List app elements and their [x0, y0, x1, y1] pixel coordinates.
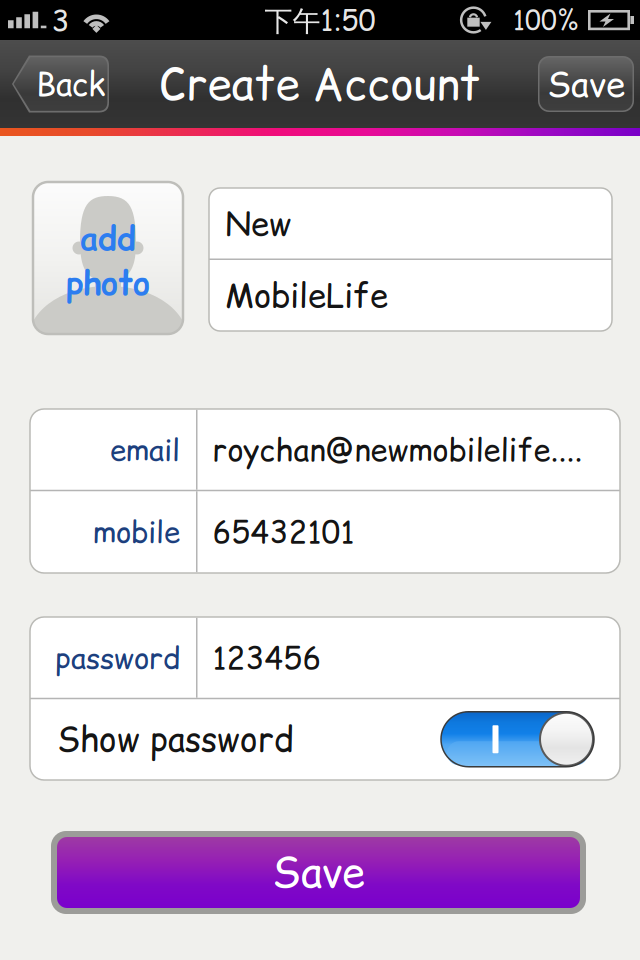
staticText: 3: [51, 0, 69, 40]
button[interactable]: mobile: [30, 491, 620, 572]
staticText: MobileLife: [225, 272, 388, 318]
staticText: New: [225, 201, 291, 246]
button[interactable]: Back: [12, 55, 109, 112]
staticText: Save: [547, 60, 625, 108]
staticText: Back: [36, 62, 105, 106]
staticText: mobile: [93, 511, 180, 552]
button[interactable]: password: [30, 618, 620, 698]
button[interactable]: New: [209, 188, 612, 258]
button[interactable]: Show password: [30, 699, 620, 779]
button[interactable]: Save: [538, 56, 634, 112]
button[interactable]: email: [30, 410, 620, 490]
staticText: roychan@newmobilelife....: [212, 428, 582, 471]
staticText: photo: [66, 261, 150, 306]
staticText: Show password: [57, 716, 294, 762]
staticText: Save: [272, 844, 365, 901]
button[interactable]: MobileLife: [209, 260, 612, 330]
button[interactable]: Add photo: [33, 182, 183, 334]
staticText: 65432101: [212, 510, 354, 553]
staticText: Create Account: [159, 53, 480, 115]
staticText: add: [80, 216, 136, 261]
button[interactable]: Save: [51, 831, 586, 914]
staticText: email: [110, 429, 180, 470]
staticText: 123456: [212, 636, 321, 679]
staticText: password: [55, 637, 180, 678]
staticText: 100%: [513, 2, 578, 38]
staticText: 下午1:50: [264, 0, 375, 40]
